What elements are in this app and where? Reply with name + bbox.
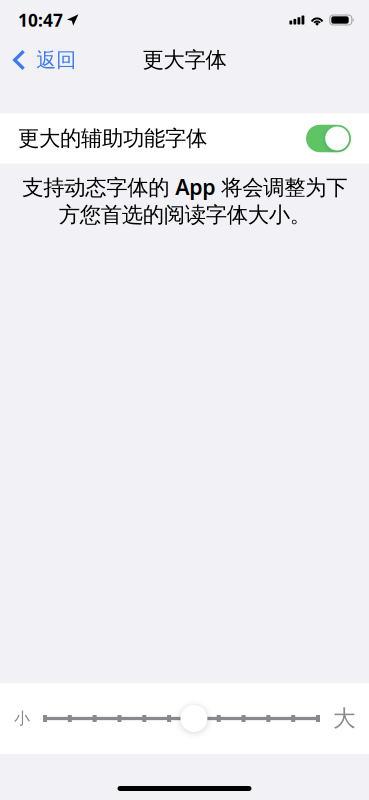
staticText: 返回 (36, 48, 76, 72)
staticText: 支持动态字体的 App 将会调整为下方您首选的阅读字体大小。 (22, 172, 347, 228)
staticText: 小 (14, 709, 30, 728)
button[interactable]: 更大的辅助功能字体 (0, 113, 369, 163)
button[interactable]: 返回 (0, 40, 86, 80)
staticText: 更大的辅助功能字体 (18, 125, 207, 152)
staticText: 大 (333, 705, 356, 732)
staticText: 更大字体 (142, 47, 226, 73)
staticText: 10:47 (18, 8, 63, 31)
